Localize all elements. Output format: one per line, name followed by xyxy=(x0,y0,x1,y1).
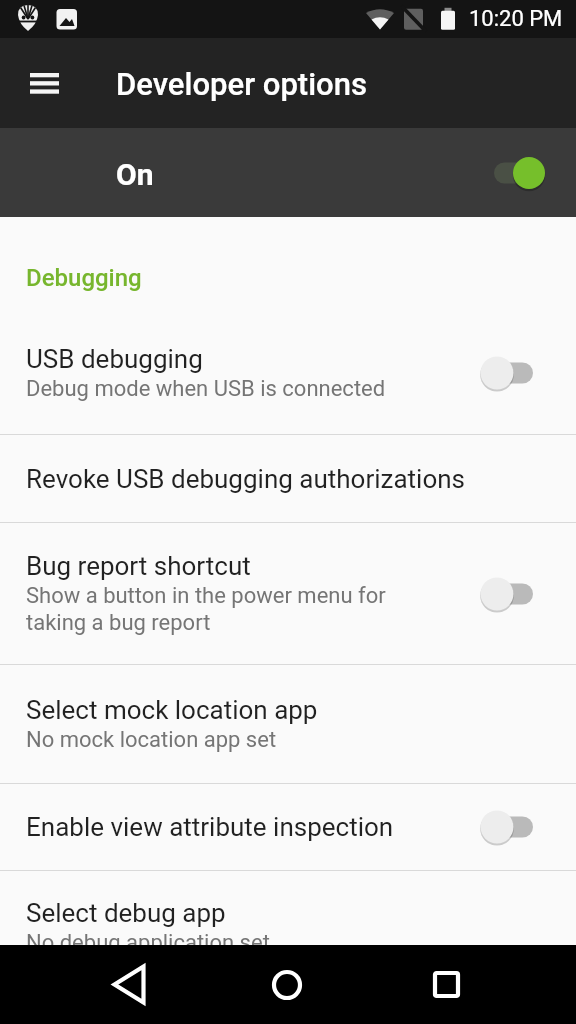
staticText: Select mock location app xyxy=(26,695,318,725)
staticText: No mock location app set xyxy=(26,727,277,753)
button[interactable] xyxy=(97,945,161,1024)
button[interactable] xyxy=(255,945,319,1024)
button[interactable]: Select mock location app xyxy=(0,665,576,783)
staticText: Debug mode when USB is connected xyxy=(26,376,386,402)
staticText: Revoke USB debugging authorizations xyxy=(26,464,466,494)
button[interactable] xyxy=(480,356,533,390)
button[interactable]: USB debugging xyxy=(0,312,576,434)
button[interactable] xyxy=(480,810,533,844)
button[interactable]: Revoke USB debugging authorizations xyxy=(0,435,576,522)
button[interactable]: On xyxy=(0,128,576,217)
staticText: 10:20 PM xyxy=(469,6,563,32)
button[interactable] xyxy=(494,156,545,190)
staticText: Select debug app xyxy=(26,898,226,928)
staticText: Enable view attribute inspection xyxy=(26,812,394,842)
button[interactable]: Select debug app xyxy=(0,871,576,945)
button[interactable]: Enable view attribute inspection xyxy=(0,784,576,870)
button[interactable]: Bug report shortcut xyxy=(0,523,576,664)
staticText: Bug report shortcut xyxy=(26,551,251,581)
staticText: Debugging xyxy=(26,264,142,292)
staticText: On xyxy=(116,157,154,192)
staticText: No debug application set xyxy=(26,930,270,945)
staticText: Show a button in the power menu for taki… xyxy=(26,583,386,636)
button[interactable] xyxy=(414,945,478,1024)
staticText: Developer options xyxy=(116,66,368,102)
staticText: USB debugging xyxy=(26,344,203,374)
button[interactable] xyxy=(480,577,533,611)
button[interactable] xyxy=(18,57,70,109)
